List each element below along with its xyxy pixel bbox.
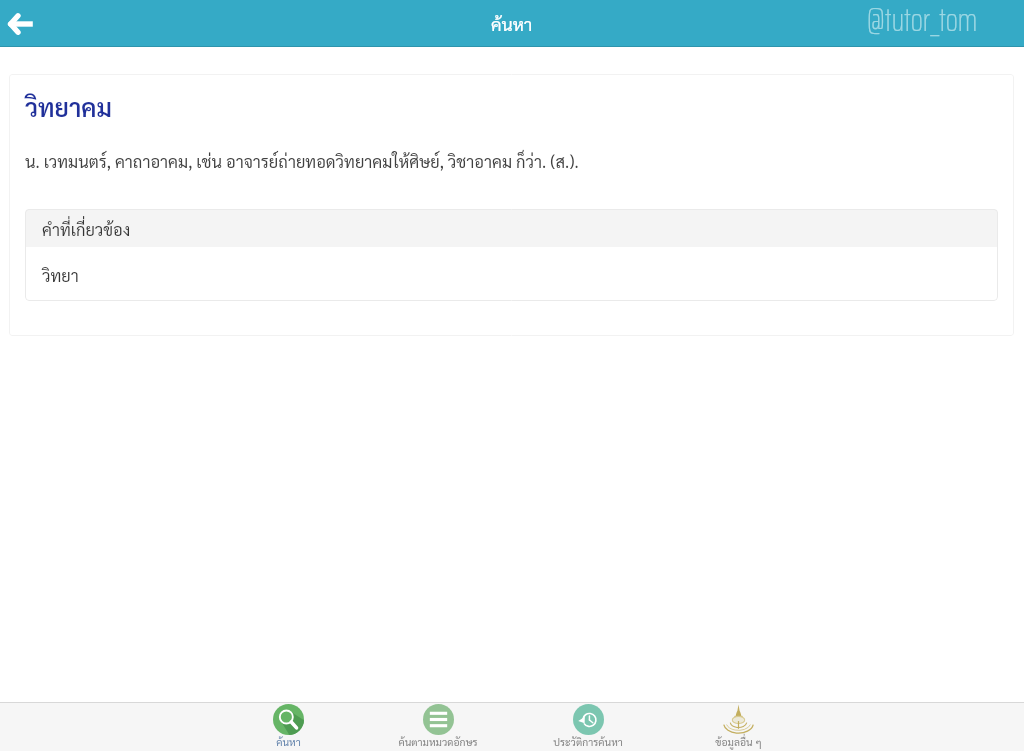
staticText: น. เวทมนตร์, คาถาอาคม, เช่น อาจารย์ถ่ายท… [25,150,579,171]
button[interactable]: ค้นหา [213,703,363,751]
staticText: ค้นหา [491,12,533,35]
staticText: ค้นตามหมวดอักษร [398,735,478,749]
button[interactable]: ค้นตามหมวดอักษร [363,703,513,751]
staticText: วิทยาคม [25,91,112,123]
staticText: ข้อมูลอื่น ๆ [715,735,762,749]
button[interactable]: ข้อมูลอื่น ๆ [663,703,813,751]
button[interactable]: Back [2,5,40,43]
button[interactable]: วิทยา [25,247,998,301]
staticText: วิทยา [42,264,79,285]
staticText: ประวัติการค้นหา [553,735,623,749]
button[interactable]: ประวัติการค้นหา [513,703,663,751]
staticText: คำที่เกี่ยวข้อง [42,218,131,239]
staticText: @tutor_tom [867,0,978,42]
staticText: ค้นหา [276,735,301,749]
